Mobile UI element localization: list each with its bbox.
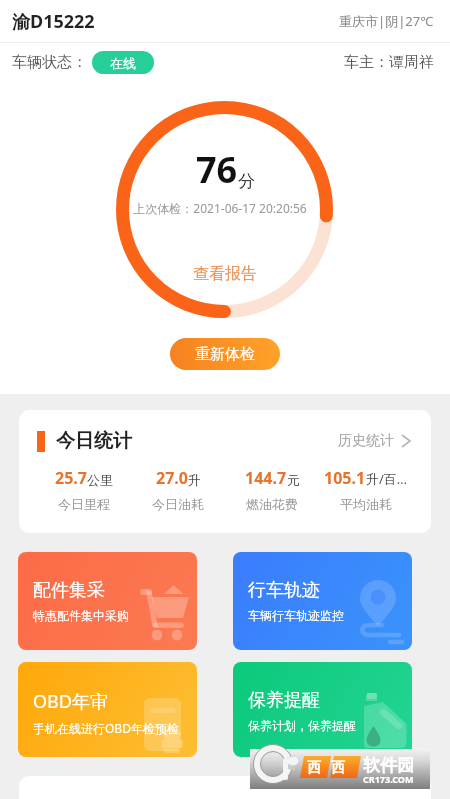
staticText: 144.7 — [245, 467, 287, 489]
staticText: 保养提醒 — [248, 689, 320, 712]
staticText: CR173.COM — [363, 773, 414, 785]
staticText: 渝D15222 — [12, 9, 95, 34]
staticText: 保养计划，保养提醒 — [248, 718, 356, 733]
button[interactable]: OBD年审 — [18, 662, 197, 757]
staticText: 行车轨迹 — [248, 579, 320, 602]
staticText: 27.0 — [156, 467, 188, 489]
staticText: 车辆行车轨迹监控 — [248, 608, 344, 623]
button[interactable]: 今日统计 — [19, 410, 431, 533]
staticText: 76 — [196, 145, 238, 194]
staticText: 今日统计 — [56, 429, 132, 453]
staticText: 25.7 — [55, 467, 87, 489]
staticText: 升/百… — [366, 470, 408, 488]
staticText: 元 — [287, 472, 300, 488]
staticText: 配件集采 — [33, 579, 105, 602]
staticText: 在线 — [110, 55, 136, 71]
button[interactable]: 行车轨迹 — [233, 552, 412, 650]
staticText: 平均油耗 — [340, 496, 392, 512]
staticText: 升 — [188, 472, 201, 488]
staticText: 今日里程 — [58, 496, 110, 512]
staticText: 历史统计 — [338, 432, 394, 450]
staticText: 分 — [238, 171, 255, 192]
staticText: 重新体检 — [195, 345, 255, 364]
staticText: 公里 — [87, 472, 113, 488]
staticText: 软件园 — [363, 755, 414, 776]
button[interactable]: 重新体检 — [170, 338, 280, 370]
button[interactable]: 历史统计 — [338, 432, 410, 450]
button[interactable]: 车辆状态： — [12, 51, 154, 74]
staticText: 105.1 — [324, 467, 366, 489]
staticText: 车辆状态： — [12, 53, 87, 72]
staticText: 车主：谭周祥 — [344, 53, 434, 72]
staticText: 查看报告 — [193, 264, 257, 284]
button[interactable]: 保养提醒 — [233, 662, 412, 757]
staticText: 西西 — [302, 759, 350, 777]
staticText: 今日油耗 — [152, 496, 204, 512]
staticText: 重庆市|阴|27℃ — [339, 12, 434, 30]
staticText: 手机在线进行OBD年检预检 — [33, 720, 179, 736]
button[interactable]: 配件集采 — [18, 552, 197, 650]
staticText: 燃油花费 — [246, 496, 298, 512]
staticText: 上次体检：2021-06-17 20:20:56 — [0, 200, 445, 216]
staticText: 特惠配件集中采购 — [33, 608, 129, 623]
staticText: OBD年审 — [33, 689, 108, 714]
button[interactable]: 查看报告 — [187, 262, 263, 286]
